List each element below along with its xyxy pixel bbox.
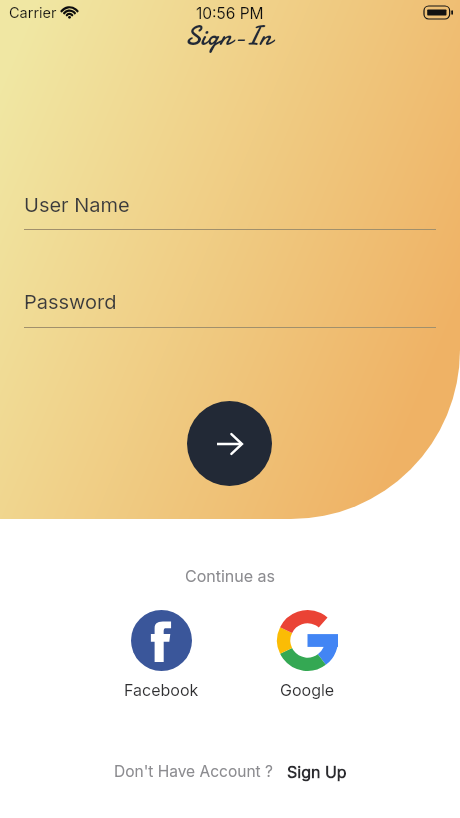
- button[interactable]: Sign in: [187, 401, 272, 486]
- staticText: Carrier: [9, 4, 57, 22]
- button[interactable]: Password: [24, 290, 436, 328]
- button[interactable]: User Name: [24, 193, 436, 230]
- staticText: 10:56 PM: [196, 4, 264, 23]
- button[interactable]: Google: [247, 610, 367, 699]
- staticText: Continue as: [185, 566, 276, 585]
- staticText: Password: [24, 290, 117, 314]
- staticText: Don't Have Account ?: [114, 762, 273, 781]
- button[interactable]: Sign Up: [287, 762, 347, 781]
- button[interactable]: Facebook: [101, 610, 221, 699]
- staticText: Sign Up: [287, 762, 347, 781]
- staticText: Sign-In: [185, 18, 272, 55]
- staticText: Facebook: [124, 680, 199, 699]
- staticText: Google: [280, 680, 335, 699]
- staticText: User Name: [24, 193, 130, 217]
